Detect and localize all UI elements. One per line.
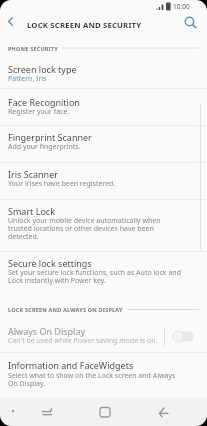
- staticText: Face Recognition: [8, 96, 80, 108]
- button[interactable]: [171, 330, 195, 343]
- button[interactable]: [0, 353, 207, 397]
- staticText: LOCK SCREEN AND SECURITY: [27, 20, 142, 31]
- staticText: Your irises have been registered.: [8, 179, 116, 189]
- button[interactable]: [0, 163, 207, 199]
- staticText: Register your face.: [8, 107, 70, 117]
- staticText: Iris Scanner: [8, 168, 58, 180]
- staticText: Add your fingerprints.: [8, 142, 81, 152]
- staticText: Set your secure lock functions, such as …: [8, 268, 181, 278]
- button[interactable]: [0, 200, 207, 250]
- staticText: trusted locations or other devices have …: [8, 224, 154, 234]
- staticText: Secure lock settings: [8, 257, 92, 269]
- staticText: Lock instantly with Power key.: [8, 276, 106, 286]
- staticText: On Display.: [8, 379, 46, 389]
- staticText: Information and FaceWidgets: [8, 359, 134, 371]
- staticText: Can't be used while Power saving mode is…: [8, 336, 158, 346]
- button[interactable]: [0, 52, 207, 88]
- staticText: Select what to show on the Lock screen a…: [8, 371, 176, 381]
- staticText: 10:00: [173, 2, 190, 11]
- staticText: PHONE SECURITY: [8, 45, 58, 52]
- button[interactable]: [85, 400, 125, 424]
- staticText: detected.: [8, 232, 39, 242]
- staticText: Always On Display: [8, 325, 86, 337]
- staticText: Screen lock type: [8, 63, 77, 75]
- staticText: Fingerprint Scanner: [8, 131, 92, 143]
- button[interactable]: [2, 14, 24, 36]
- button[interactable]: [0, 89, 207, 125]
- button[interactable]: [145, 400, 185, 424]
- button[interactable]: [28, 400, 68, 424]
- button[interactable]: [0, 126, 207, 162]
- staticText: Smart Lock: [8, 205, 55, 217]
- staticText: Unlock your mobile device automatically …: [8, 216, 161, 226]
- button[interactable]: [181, 13, 205, 37]
- button[interactable]: [0, 316, 207, 350]
- button[interactable]: [0, 252, 207, 296]
- staticText: Pattern, Iris: [8, 74, 47, 84]
- staticText: LOCK SCREEN AND ALWAYS ON DISPLAY: [8, 306, 123, 313]
